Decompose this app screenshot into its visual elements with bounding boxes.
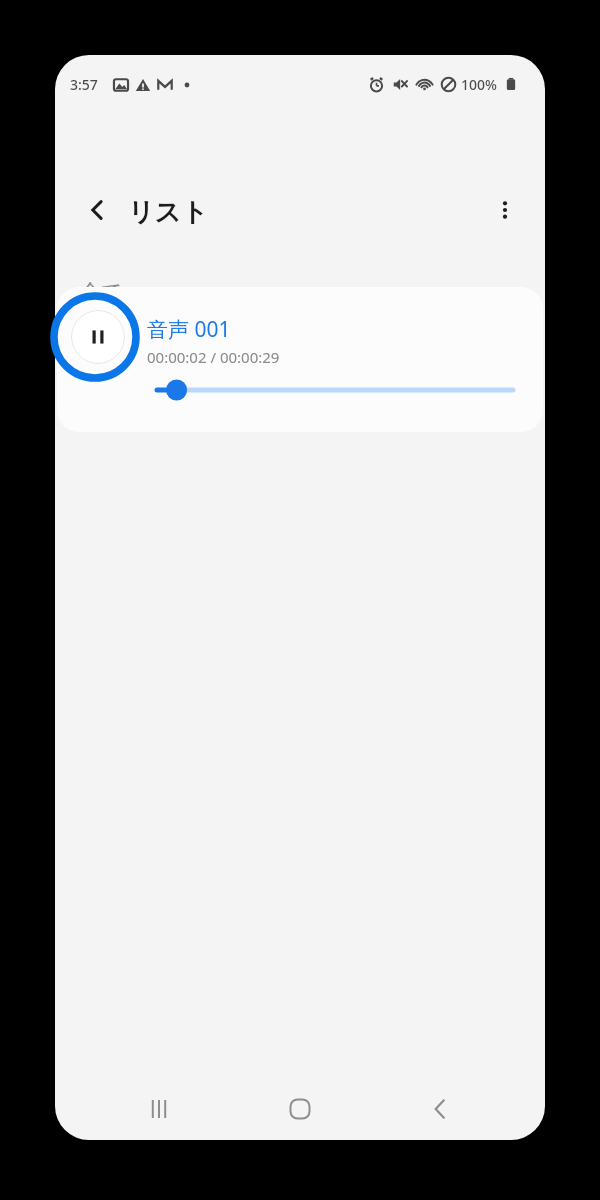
button[interactable]: More options	[480, 185, 530, 235]
button[interactable]: Home	[273, 1082, 327, 1136]
button[interactable]: Back	[413, 1082, 467, 1136]
button[interactable]: Recent apps	[132, 1082, 186, 1136]
staticText: 00:00:02 / 00:00:29	[147, 347, 280, 367]
staticText: 音声 001	[147, 315, 231, 344]
staticText: 100%	[461, 75, 497, 94]
button[interactable]: Back	[73, 185, 123, 235]
staticText: 全て	[80, 279, 123, 305]
button[interactable]: Pause	[57, 287, 543, 432]
button[interactable]: 全て	[75, 270, 153, 314]
staticText: 3:57	[70, 75, 98, 94]
staticText: リスト	[128, 196, 208, 229]
button[interactable]: Pause	[71, 310, 125, 364]
button[interactable]	[149, 373, 519, 407]
